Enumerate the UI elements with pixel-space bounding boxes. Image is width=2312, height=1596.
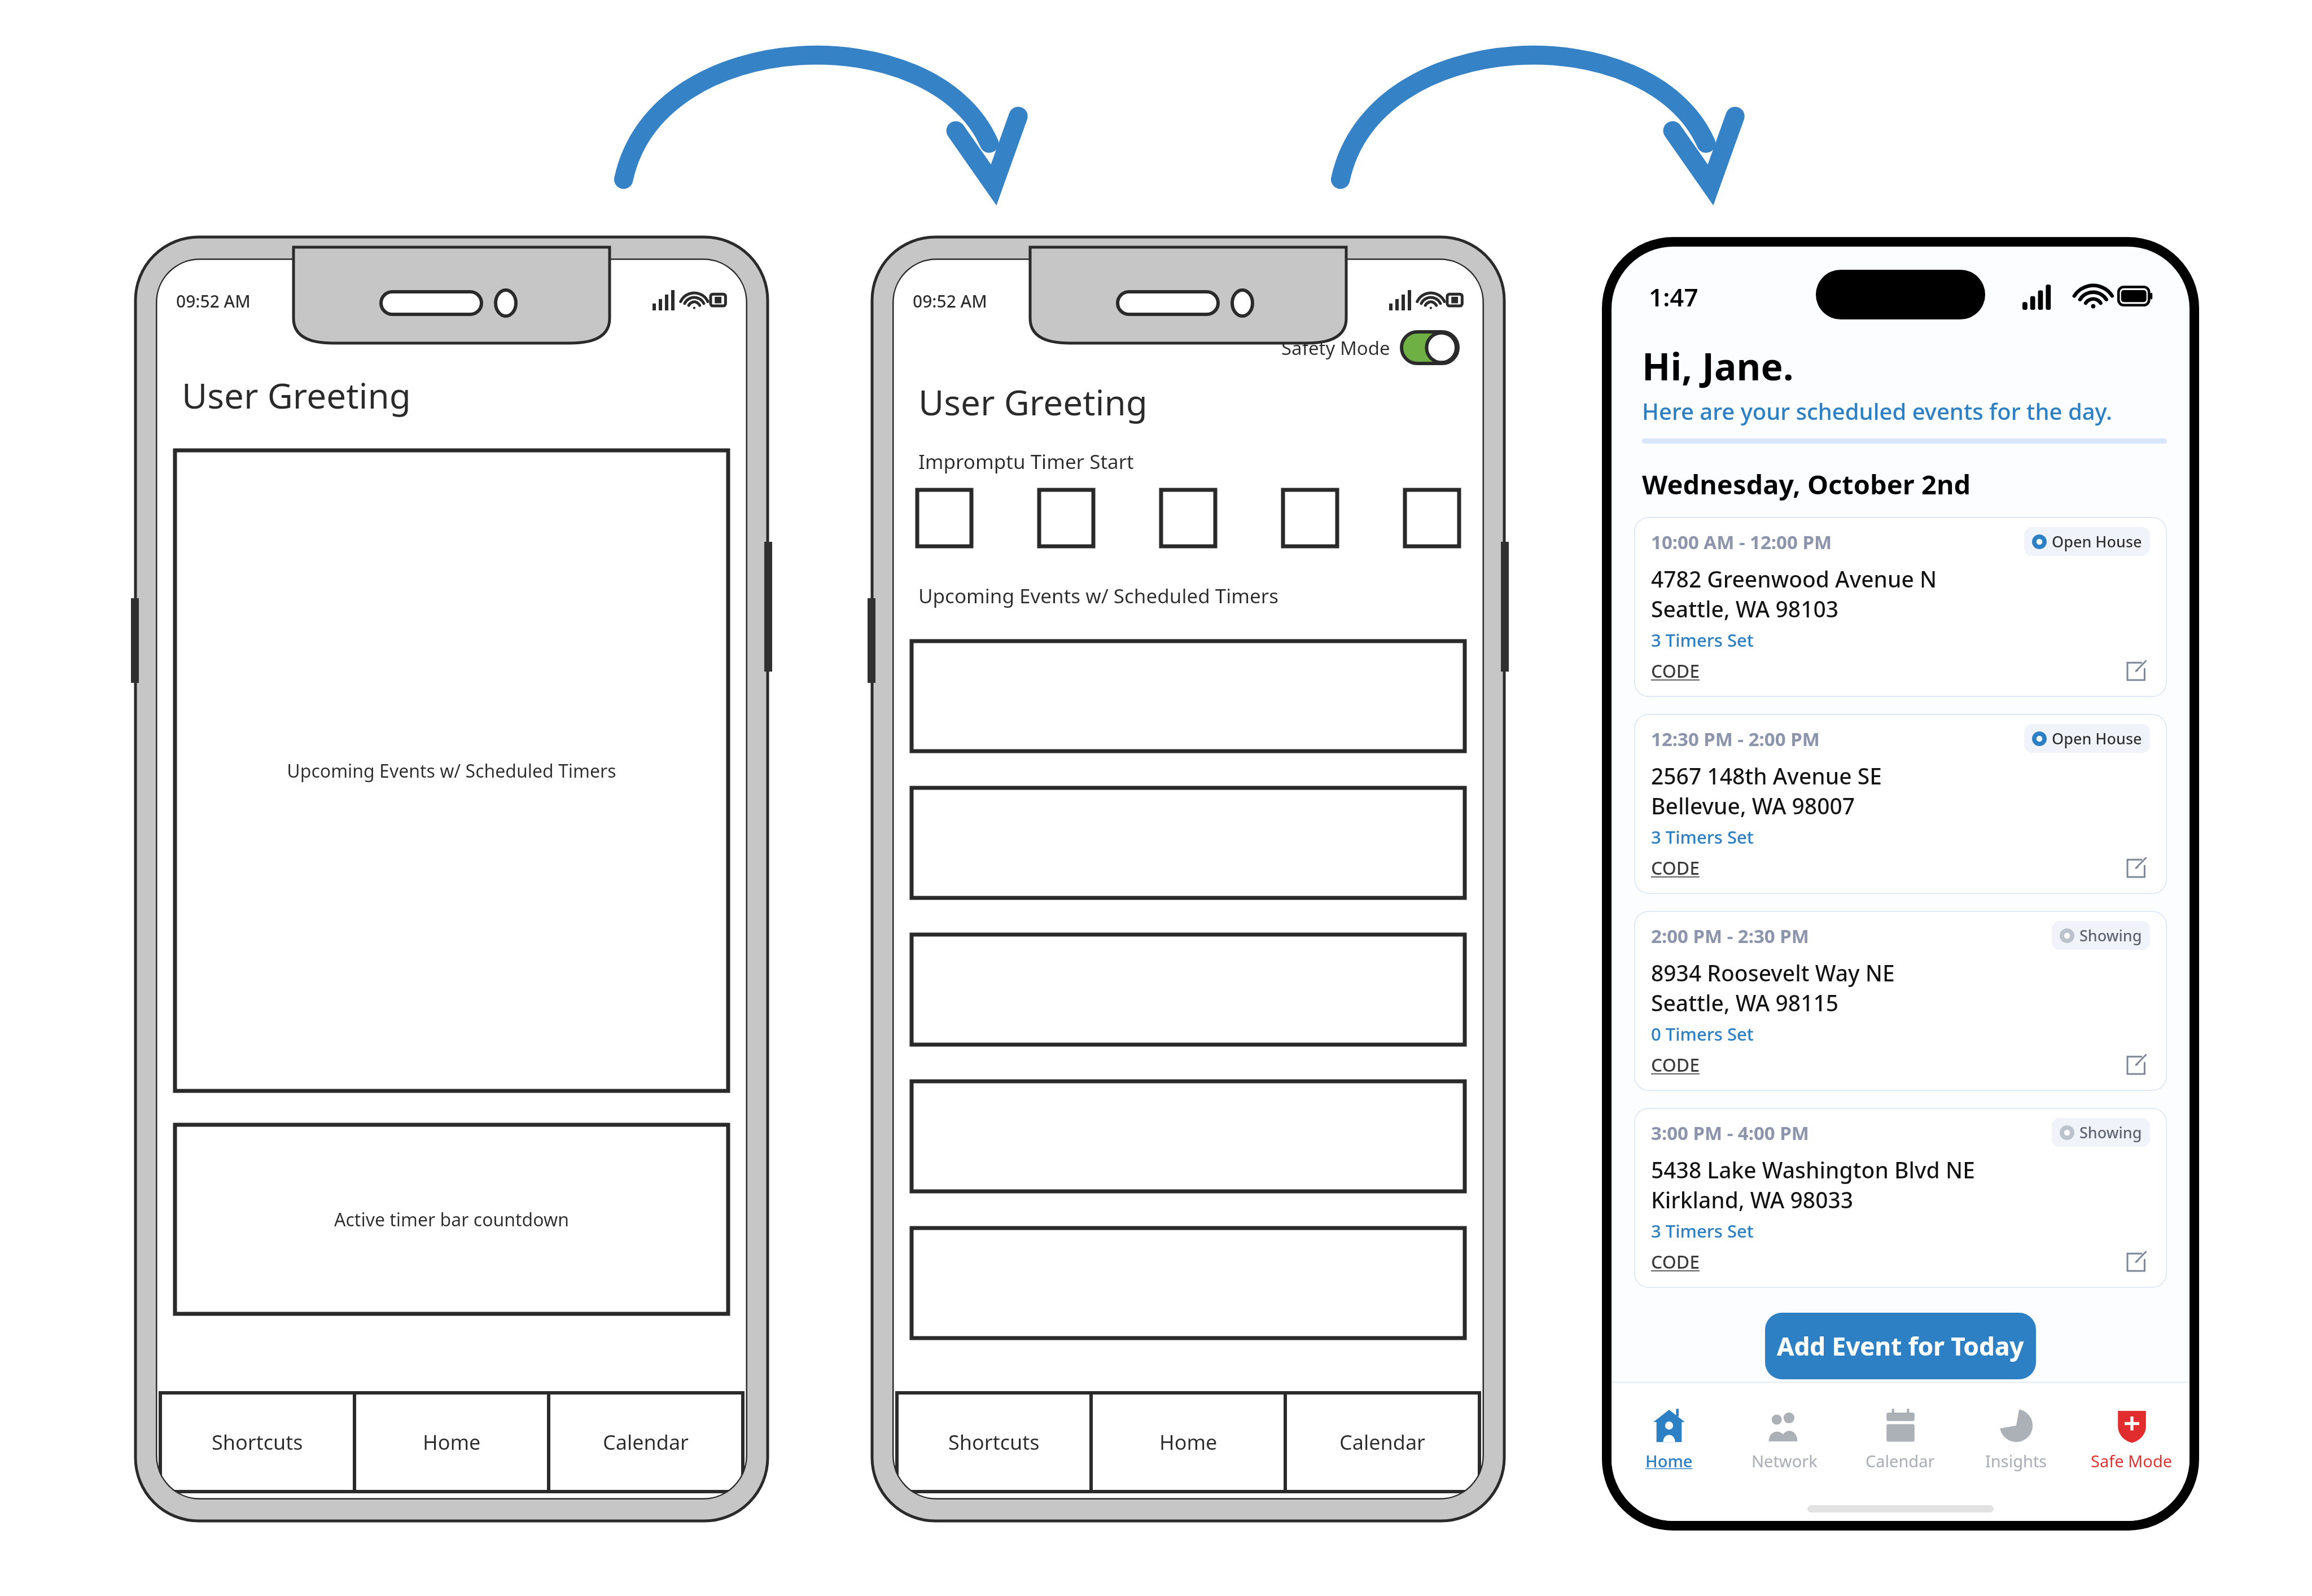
staticText: Here are your scheduled events for the d… bbox=[1642, 396, 2112, 426]
button[interactable] bbox=[912, 1081, 1465, 1191]
staticText: Bellevue, WA 98007 bbox=[1651, 791, 1855, 821]
button[interactable]: CODE bbox=[1651, 1249, 1700, 1274]
button[interactable]: Insights bbox=[1958, 1383, 2074, 1496]
staticText: Home bbox=[423, 1428, 481, 1456]
button[interactable]: Open House bbox=[2024, 527, 2150, 556]
button[interactable]: Edit event bbox=[2123, 854, 2150, 882]
button[interactable] bbox=[1161, 490, 1215, 546]
button[interactable] bbox=[912, 1228, 1465, 1338]
staticText: 2567 148th Avenue SE bbox=[1651, 761, 1882, 791]
staticText: 09:52 AM bbox=[176, 290, 251, 313]
button[interactable]: 10:00 AM - 12:00 PM bbox=[1634, 517, 2167, 697]
button[interactable]: Calendar bbox=[1285, 1393, 1479, 1492]
button[interactable]: Add Event for Today bbox=[1765, 1313, 2036, 1379]
staticText: 09:52 AM bbox=[913, 290, 987, 313]
staticText: Active timer bar countdown bbox=[334, 1207, 569, 1232]
staticText: Safe Mode bbox=[2091, 1450, 2173, 1472]
staticText: Open House bbox=[2052, 728, 2142, 749]
staticText: Calendar bbox=[1339, 1428, 1425, 1456]
button[interactable]: Edit event bbox=[2123, 657, 2150, 685]
staticText: CODE bbox=[1651, 659, 1700, 683]
button[interactable]: Active timer bar countdown bbox=[175, 1125, 728, 1314]
button[interactable]: Home bbox=[1612, 1383, 1727, 1496]
button[interactable] bbox=[1402, 332, 1458, 363]
staticText: Shortcuts bbox=[948, 1428, 1040, 1456]
staticText: 4782 Greenwood Avenue N bbox=[1651, 564, 1937, 594]
button[interactable]: Edit event bbox=[2123, 1051, 2150, 1078]
staticText: Seattle, WA 98115 bbox=[1651, 988, 1839, 1018]
button[interactable]: CODE bbox=[1651, 1053, 1700, 1077]
button[interactable]: Home bbox=[1091, 1393, 1285, 1492]
staticText: Upcoming Events w/ Scheduled Timers bbox=[918, 582, 1278, 610]
button[interactable]: Calendar bbox=[549, 1393, 743, 1492]
button[interactable]: Shortcuts bbox=[897, 1393, 1091, 1492]
staticText: User Greeting bbox=[918, 378, 1148, 426]
staticText: 5438 Lake Washington Blvd NE bbox=[1651, 1155, 1975, 1185]
staticText: 10:00 AM - 12:00 PM bbox=[1651, 529, 1832, 555]
button[interactable]: Upcoming Events w/ Scheduled Timers bbox=[175, 450, 728, 1091]
button[interactable]: 2:00 PM - 2:30 PM bbox=[1634, 911, 2167, 1091]
staticText: Impromptu Timer Start bbox=[918, 448, 1134, 475]
button[interactable]: 3:00 PM - 4:00 PM bbox=[1634, 1108, 2167, 1288]
button[interactable]: Edit event bbox=[2123, 1248, 2150, 1275]
button[interactable]: 3 Timers Set bbox=[1651, 825, 1754, 849]
button[interactable]: Showing bbox=[2052, 921, 2150, 950]
button[interactable] bbox=[912, 641, 1465, 751]
button[interactable]: Showing bbox=[2052, 1118, 2150, 1147]
staticText: Home bbox=[1159, 1428, 1218, 1456]
button[interactable] bbox=[917, 490, 971, 546]
button[interactable] bbox=[912, 935, 1465, 1045]
staticText: Home bbox=[1645, 1450, 1693, 1472]
staticText: Open House bbox=[2052, 531, 2142, 552]
button[interactable] bbox=[1283, 490, 1337, 546]
staticText: CODE bbox=[1651, 856, 1700, 880]
staticText: Insights bbox=[1985, 1450, 2047, 1472]
staticText: Upcoming Events w/ Scheduled Timers bbox=[287, 758, 616, 783]
button[interactable]: 12:30 PM - 2:00 PM bbox=[1634, 714, 2167, 894]
staticText: Kirkland, WA 98033 bbox=[1651, 1185, 1854, 1214]
button[interactable]: Open House bbox=[2024, 724, 2150, 753]
staticText: 8934 Roosevelt Way NE bbox=[1651, 958, 1895, 988]
staticText: Network bbox=[1751, 1450, 1818, 1472]
button[interactable]: CODE bbox=[1651, 856, 1700, 880]
staticText: 2:00 PM - 2:30 PM bbox=[1651, 923, 1809, 949]
staticText: CODE bbox=[1651, 1053, 1700, 1077]
button[interactable]: Safe Mode bbox=[2074, 1383, 2190, 1496]
staticText: 12:30 PM - 2:00 PM bbox=[1651, 726, 1820, 752]
staticText: Wednesday, October 2nd bbox=[1642, 466, 1971, 502]
staticText: Calendar bbox=[1866, 1450, 1935, 1472]
button[interactable]: 0 Timers Set bbox=[1651, 1022, 1754, 1046]
button[interactable]: Shortcuts bbox=[160, 1393, 354, 1492]
staticText: Calendar bbox=[603, 1428, 689, 1456]
staticText: Showing bbox=[2079, 1122, 2142, 1143]
button[interactable] bbox=[912, 788, 1465, 898]
button[interactable]: Network bbox=[1727, 1383, 1842, 1496]
staticText: 3:00 PM - 4:00 PM bbox=[1651, 1120, 1809, 1146]
staticText: User Greeting bbox=[182, 371, 411, 419]
button[interactable]: Home bbox=[354, 1393, 549, 1492]
staticText: Shortcuts bbox=[212, 1428, 303, 1456]
button[interactable]: Calendar bbox=[1842, 1383, 1958, 1496]
staticText: Showing bbox=[2079, 925, 2142, 946]
button[interactable] bbox=[1405, 490, 1459, 546]
staticText: Hi, Jane. bbox=[1642, 340, 1794, 391]
staticText: CODE bbox=[1651, 1249, 1700, 1274]
button[interactable]: 3 Timers Set bbox=[1651, 1219, 1754, 1243]
staticText: 1:47 bbox=[1649, 280, 1698, 314]
staticText: Add Event for Today bbox=[1777, 1329, 2024, 1363]
button[interactable]: CODE bbox=[1651, 659, 1700, 683]
button[interactable]: 3 Timers Set bbox=[1651, 628, 1754, 652]
button[interactable] bbox=[1039, 490, 1093, 546]
staticText: Seattle, WA 98103 bbox=[1651, 594, 1839, 624]
staticText: Safety Mode bbox=[1281, 335, 1390, 361]
